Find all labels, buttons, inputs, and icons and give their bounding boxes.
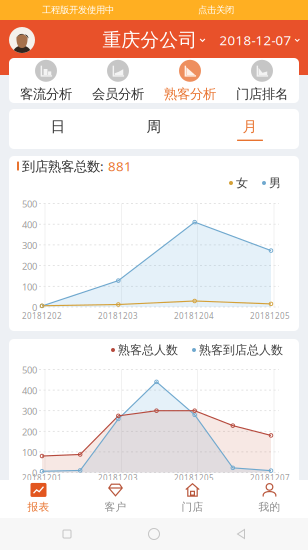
staticText: 门店排名 xyxy=(236,86,288,102)
button[interactable]: 报表 xyxy=(0,480,77,518)
staticText: 20181203 xyxy=(98,473,138,483)
staticText: 200 xyxy=(22,426,37,438)
staticText: 100 xyxy=(22,446,37,459)
button[interactable]: 周 xyxy=(106,109,202,149)
button[interactable]: 熟客分析 xyxy=(154,58,226,103)
staticText: 20181203 xyxy=(98,311,138,321)
button[interactable]: 门店 xyxy=(154,480,231,518)
button[interactable]: 客流分析 xyxy=(10,58,82,103)
staticText: 客流分析 xyxy=(20,86,72,102)
staticText: 400 xyxy=(22,384,37,397)
button[interactable]: 2018-12-07 xyxy=(219,23,308,57)
button[interactable]: 门店排名 xyxy=(226,58,298,103)
staticText: 周 xyxy=(146,118,161,136)
staticText: 20181205 xyxy=(174,473,214,483)
staticText: 500 xyxy=(22,198,37,210)
staticText: 会员分析 xyxy=(92,86,144,102)
button[interactable]: 月 xyxy=(202,109,298,149)
staticText: 20181205 xyxy=(250,311,290,321)
staticText: 报表 xyxy=(27,500,49,513)
staticText: 20181207 xyxy=(250,473,290,483)
button[interactable]: Home xyxy=(134,517,174,550)
button[interactable]: 会员分析 xyxy=(82,58,154,103)
staticText: 熟客分析 xyxy=(164,86,216,102)
staticText: 熟客总人数 xyxy=(118,343,178,357)
staticText: 0 xyxy=(32,467,37,479)
staticText: 2018-12-07 xyxy=(219,31,291,49)
staticText: 20181202 xyxy=(22,311,62,321)
staticText: 客户 xyxy=(104,500,126,513)
button[interactable]: Back xyxy=(221,517,261,550)
button[interactable]: 重庆分公司 xyxy=(102,23,205,57)
staticText: 到店熟客总数: xyxy=(22,157,104,175)
staticText: 20181204 xyxy=(174,311,214,321)
button[interactable]: 客户 xyxy=(77,480,154,518)
button[interactable]: Recents xyxy=(47,517,87,550)
staticText: 200 xyxy=(22,260,37,272)
button[interactable]: 我的 xyxy=(231,480,308,518)
staticText: 我的 xyxy=(258,500,280,513)
staticText: 熟客到店总人数 xyxy=(199,343,283,357)
staticText: 门店 xyxy=(181,500,203,513)
staticText: 重庆分公司 xyxy=(102,28,197,51)
button[interactable]: 用户头像 xyxy=(0,23,44,57)
staticText: 400 xyxy=(22,218,37,231)
staticText: 工程版开发使用中 xyxy=(42,4,114,16)
staticText: 500 xyxy=(22,364,37,376)
staticText: 0 xyxy=(32,301,37,314)
staticText: 日 xyxy=(50,118,65,136)
staticText: 点击关闭 xyxy=(198,4,234,16)
staticText: 100 xyxy=(22,281,37,293)
staticText: 男 xyxy=(269,176,281,190)
button[interactable]: 日 xyxy=(10,109,106,149)
staticText: 300 xyxy=(22,405,37,417)
staticText: 20181201 xyxy=(22,473,62,483)
staticText: 女 xyxy=(236,176,248,190)
staticText: 月 xyxy=(242,118,257,136)
staticText: 300 xyxy=(22,239,37,252)
staticText: 881 xyxy=(108,157,132,175)
